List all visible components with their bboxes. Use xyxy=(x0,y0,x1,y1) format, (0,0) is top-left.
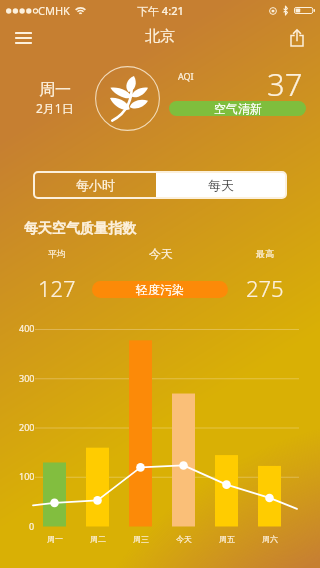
staticText: CMHK xyxy=(38,3,70,18)
staticText: 0 xyxy=(29,520,35,532)
staticText: 每天 xyxy=(208,177,234,193)
staticText: 下午 4:21 xyxy=(137,3,184,18)
button[interactable]: Menu xyxy=(0,20,46,56)
staticText: 2月1日 xyxy=(36,100,74,116)
staticText: AQI xyxy=(178,70,194,82)
staticText: 周三 xyxy=(133,534,149,544)
button[interactable]: 空气清新 xyxy=(169,101,306,116)
staticText: 每天空气质量指数 xyxy=(24,220,136,238)
staticText: 周二 xyxy=(90,534,106,544)
staticText: 300 xyxy=(19,372,35,384)
staticText: 今天 xyxy=(176,534,192,544)
staticText: 周一 xyxy=(47,534,63,544)
staticText: 100 xyxy=(19,470,35,482)
staticText: 275 xyxy=(246,273,284,303)
staticText: 周五 xyxy=(219,534,235,544)
staticText: 最高 xyxy=(256,248,274,259)
staticText: 400 xyxy=(19,322,35,334)
staticText: 北京 xyxy=(145,27,175,46)
staticText: 空气清新 xyxy=(214,101,262,116)
staticText: 轻度污染 xyxy=(136,282,184,297)
staticText: 平均 xyxy=(48,248,66,259)
staticText: 200 xyxy=(19,421,35,433)
button[interactable]: 轻度污染 xyxy=(92,281,228,298)
button[interactable]: 每小时 xyxy=(34,172,156,198)
staticText: 周一 xyxy=(39,80,71,100)
staticText: 今天 xyxy=(149,246,173,261)
staticText: 每小时 xyxy=(76,177,115,193)
button[interactable]: 每天 xyxy=(156,172,286,198)
button[interactable]: Share xyxy=(274,20,320,56)
staticText: 周六 xyxy=(262,534,278,544)
staticText: 37 xyxy=(267,63,303,105)
staticText: 127 xyxy=(38,273,76,303)
